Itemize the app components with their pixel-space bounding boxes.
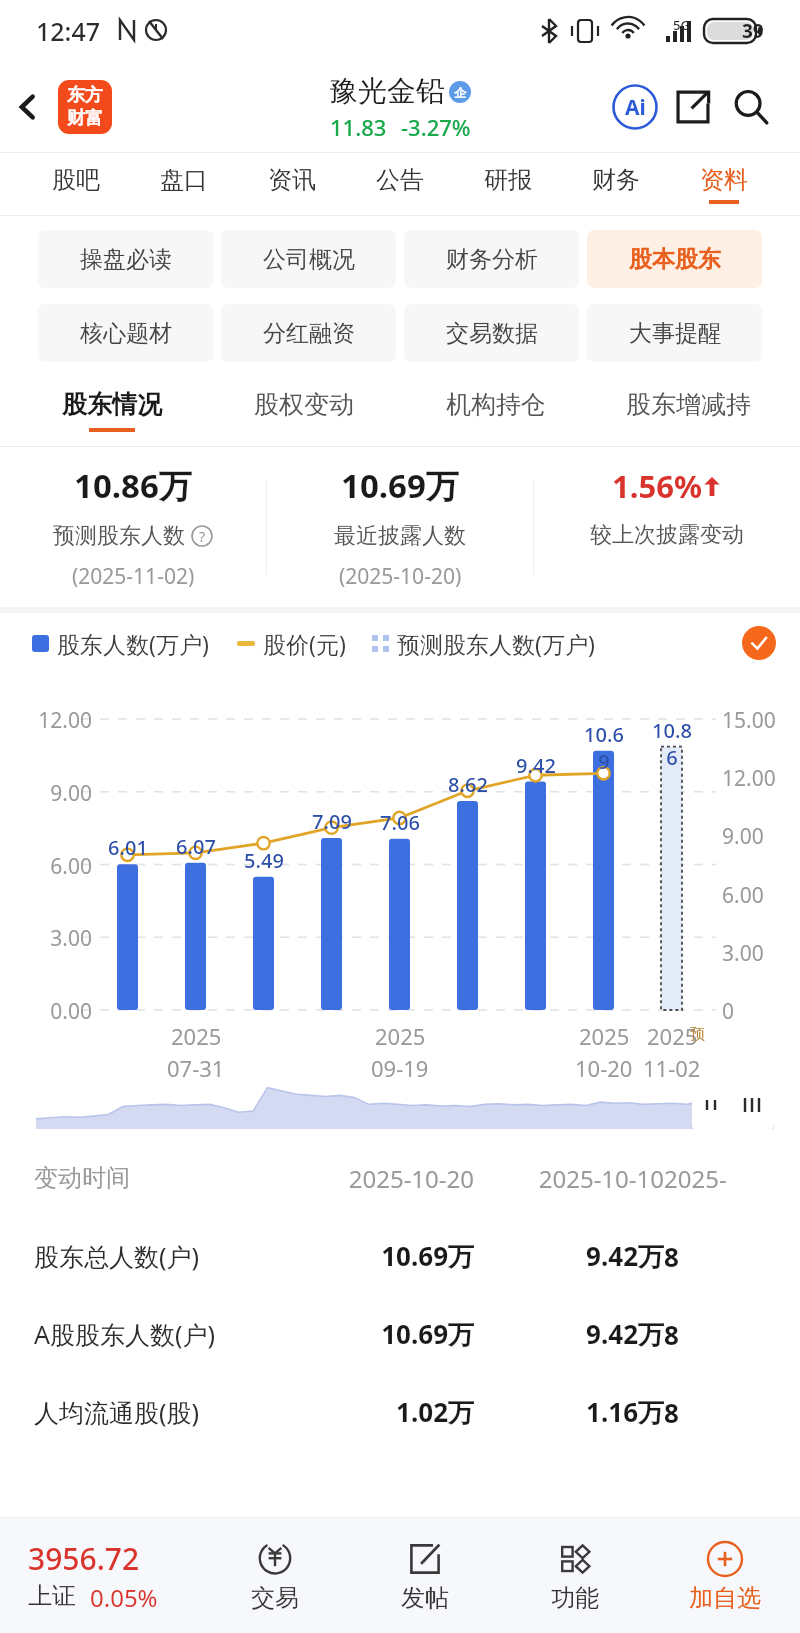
staticText: 上证 <box>28 1581 76 1611</box>
button[interactable]: 核心题材 <box>38 304 213 362</box>
staticText: 较上次披露变动 <box>590 521 744 549</box>
staticText: 2025 <box>647 1021 698 1051</box>
button[interactable]: 股东增减持 <box>592 374 784 446</box>
staticText: 10.69万 <box>284 1238 474 1274</box>
staticText: 股本股东 <box>629 245 721 274</box>
staticText: 9.42 <box>513 752 559 779</box>
staticText: 2025 <box>579 1021 630 1051</box>
staticText: 财富 <box>67 107 103 130</box>
staticText: 1.02万 <box>284 1394 474 1430</box>
button[interactable]: 人均流通股(股) <box>34 1373 800 1451</box>
staticText: 8.62 <box>445 771 491 798</box>
button[interactable]: A股股东人数(户) <box>34 1295 800 1373</box>
button[interactable]: 交易 <box>200 1518 350 1633</box>
button[interactable]: 公司概况 <box>221 230 396 288</box>
staticText: 东方 <box>67 84 103 107</box>
staticText: 6.01 <box>105 834 151 861</box>
button[interactable]: 发帖 <box>350 1518 500 1633</box>
staticText: 公告 <box>376 165 424 195</box>
button[interactable]: 研报 <box>454 153 562 215</box>
button[interactable]: Share <box>664 78 722 136</box>
button[interactable] <box>692 1077 730 1133</box>
staticText: 资料 <box>700 165 748 195</box>
button[interactable]: 股东情况 <box>16 374 208 446</box>
staticText: -3.27% <box>401 112 471 142</box>
staticText: 财务 <box>592 165 640 195</box>
staticText: 股东增减持 <box>626 389 751 420</box>
staticText: 交易 <box>251 1583 299 1613</box>
button[interactable]: 股东总人数(户) <box>34 1217 800 1295</box>
staticText: 6.00 <box>20 852 92 881</box>
staticText: 10.86 <box>649 717 695 771</box>
staticText: 预 <box>690 1025 705 1044</box>
staticText: 10.69 <box>581 721 627 775</box>
staticText: 发帖 <box>401 1583 449 1613</box>
staticText: 预测股东人数(万户) <box>397 628 595 659</box>
staticText: 09-19 <box>371 1053 429 1083</box>
button[interactable]: 股吧 <box>22 153 130 215</box>
button[interactable]: 3956.72 <box>0 1538 200 1614</box>
staticText: 15.00 <box>722 706 776 735</box>
staticText: 3956.72 <box>28 1538 140 1579</box>
staticText: 股吧 <box>52 165 100 195</box>
staticText: 5G <box>673 16 690 34</box>
staticText: 股东总人数(户) <box>34 1239 284 1273</box>
button[interactable]: 交易数据 <box>404 304 579 362</box>
staticText: 9.42万 <box>474 1238 664 1274</box>
staticText: 功能 <box>551 1583 599 1613</box>
staticText: 8 <box>664 1317 679 1352</box>
button[interactable]: 大事提醒 <box>587 304 762 362</box>
staticText: 1.16万 <box>474 1394 664 1430</box>
staticText: 变动时间 <box>34 1163 284 1193</box>
button[interactable]: 操盘必读 <box>38 230 213 288</box>
staticText: 交易数据 <box>446 319 538 348</box>
staticText: 股权变动 <box>254 389 354 420</box>
staticText: 股东情况 <box>62 389 162 420</box>
staticText: 人均流通股(股) <box>34 1395 284 1429</box>
button[interactable]: 公告 <box>346 153 454 215</box>
button[interactable]: Search <box>722 78 780 136</box>
staticText: (2025-11-02) <box>72 562 195 591</box>
staticText: 0.00 <box>20 997 92 1026</box>
staticText: 6.00 <box>722 881 764 910</box>
button[interactable]: 功能 <box>500 1518 650 1633</box>
button[interactable]: 股本股东 <box>587 230 762 288</box>
staticText: 12:47 <box>36 14 101 48</box>
button[interactable] <box>730 1077 774 1133</box>
button[interactable]: 财务分析 <box>404 230 579 288</box>
button[interactable]: AI <box>606 78 664 136</box>
staticText: 0 <box>722 997 735 1026</box>
staticText: 操盘必读 <box>80 245 172 274</box>
staticText: 8 <box>664 1395 679 1430</box>
staticText: 2025 <box>171 1021 222 1051</box>
button[interactable]: 资料 <box>670 153 778 215</box>
button[interactable]: 加自选 <box>650 1518 800 1633</box>
button[interactable]: Back <box>0 79 56 135</box>
button[interactable]: 资讯 <box>238 153 346 215</box>
staticText: 最近披露人数 <box>334 522 466 550</box>
staticText: (2025-10-20) <box>339 562 462 591</box>
staticText: 9.00 <box>722 822 764 851</box>
button[interactable]: 股权变动 <box>208 374 400 446</box>
staticText: 研报 <box>484 165 532 195</box>
staticText: 财务分析 <box>446 245 538 274</box>
staticText: 11-02 <box>643 1053 701 1083</box>
staticText: 0.05% <box>90 1581 158 1614</box>
staticText: 9.42万 <box>474 1316 664 1352</box>
staticText: 机构持仓 <box>446 389 546 420</box>
staticText: A股股东人数(户) <box>34 1317 284 1351</box>
staticText: 公司概况 <box>263 245 355 274</box>
button[interactable]: 盘口 <box>130 153 238 215</box>
staticText: 2025 <box>375 1021 426 1051</box>
staticText: 预测股东人数 <box>53 522 185 550</box>
staticText: 3.00 <box>722 939 764 968</box>
staticText: 加自选 <box>689 1583 761 1613</box>
button[interactable]: 分红融资 <box>221 304 396 362</box>
button[interactable]: Eastmoney <box>58 80 112 134</box>
button[interactable]: 财务 <box>562 153 670 215</box>
staticText: 豫光金铅 <box>329 73 445 110</box>
staticText: 资讯 <box>268 165 316 195</box>
button[interactable]: Confirm <box>742 626 776 660</box>
button[interactable]: 机构持仓 <box>400 374 592 446</box>
